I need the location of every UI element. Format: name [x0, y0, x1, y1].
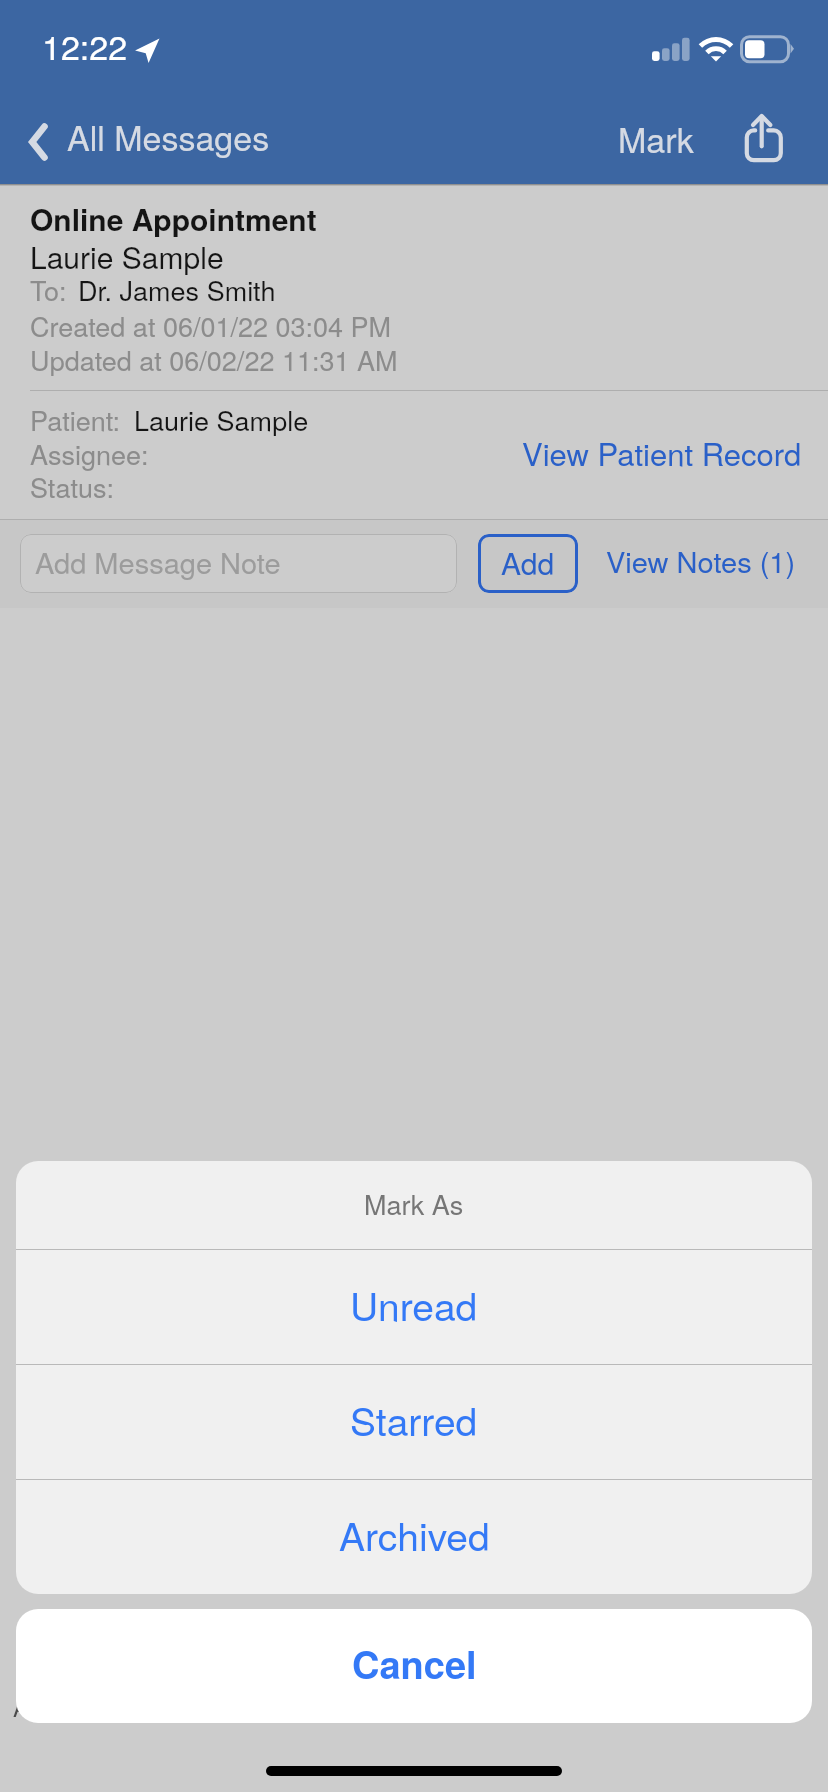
staticText: To:: [30, 270, 67, 309]
staticText: View Notes (1): [606, 540, 796, 582]
staticText: 12:22: [42, 21, 128, 70]
staticText: Created at 06/01/22 03:04 PM: [30, 306, 392, 345]
staticText: Cancel: [352, 1636, 477, 1690]
staticText: Mark As: [364, 1184, 464, 1223]
staticText: Laurie Sample: [134, 400, 309, 439]
staticText: Patient:: [30, 400, 120, 439]
staticText: Starred: [350, 1391, 478, 1447]
staticText: Online Appointment: [30, 197, 317, 240]
button[interactable]: Cancel: [16, 1609, 812, 1723]
button[interactable]: Starred: [16, 1365, 812, 1479]
button[interactable]: All Messages: [24, 116, 270, 165]
button[interactable]: Add: [478, 534, 578, 593]
staticText: Updated at 06/02/22 11:31 AM: [30, 340, 398, 379]
staticText: All Messages: [67, 112, 270, 161]
staticText: Assignee:: [30, 434, 149, 473]
button[interactable]: Share: [740, 110, 788, 166]
staticText: Add Message Note: [35, 541, 281, 583]
staticText: Archived: [339, 1506, 490, 1562]
staticText: View Patient Record: [522, 430, 802, 474]
staticText: Add: [501, 541, 555, 584]
button[interactable]: Archived: [16, 1480, 812, 1594]
staticText: Status:: [30, 467, 114, 506]
staticText: Unread: [350, 1276, 478, 1332]
button[interactable]: Mark: [618, 114, 694, 163]
staticText: Dr. James Smith: [78, 270, 276, 309]
staticText: Mark: [618, 114, 694, 163]
button[interactable]: Add Message Note: [20, 534, 457, 593]
button[interactable]: View Patient Record: [522, 430, 802, 474]
staticText: Laurie Sample: [30, 235, 224, 278]
staticText: A: [13, 1689, 30, 1723]
button[interactable]: View Notes (1): [606, 540, 796, 582]
button[interactable]: Unread: [16, 1250, 812, 1364]
